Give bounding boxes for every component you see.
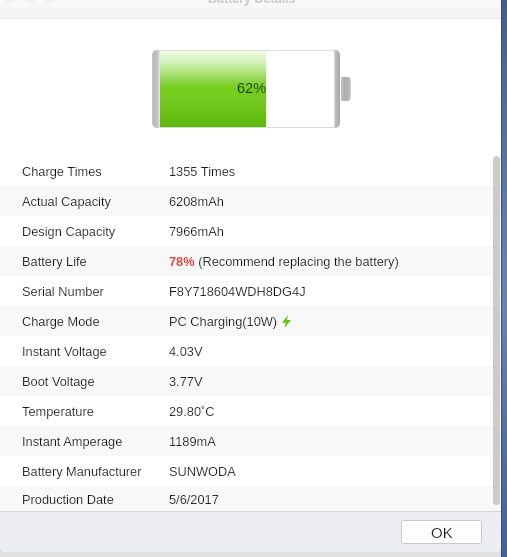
button[interactable]: Production Date	[0, 486, 501, 512]
staticText: Instant Amperage	[22, 434, 123, 448]
button[interactable]: Actual Capacity	[0, 186, 501, 216]
staticText: 6208mAh	[169, 194, 224, 208]
staticText: 29.80˚C	[169, 404, 215, 418]
staticText: PC Charging(10W)	[169, 314, 278, 328]
staticText: 62%	[237, 80, 267, 96]
staticText: F8Y718604WDH8DG4J	[169, 284, 306, 298]
button[interactable]: Charge Mode	[0, 306, 501, 336]
button[interactable]: Instant Amperage	[0, 426, 501, 456]
staticText: Serial Number	[22, 284, 104, 298]
staticText: Charge Times	[22, 164, 102, 178]
button[interactable]: Boot Voltage	[0, 366, 501, 396]
staticText: 5/6/2017	[169, 492, 219, 506]
staticText: Actual Capacity	[22, 194, 111, 208]
button[interactable]: Instant Voltage	[0, 336, 501, 366]
staticText: 78% (Recommend replacing the battery)	[169, 254, 399, 268]
button[interactable]: Design Capacity	[0, 216, 501, 246]
staticText: Design Capacity	[22, 224, 116, 238]
button[interactable]: Temperature	[0, 396, 501, 426]
staticText: Boot Voltage	[22, 374, 95, 388]
button[interactable]: OK	[401, 520, 482, 544]
staticText: Battery Details	[208, 0, 296, 6]
staticText: Temperature	[22, 404, 94, 418]
button[interactable]: Serial Number	[0, 276, 501, 306]
staticText: OK	[431, 524, 453, 541]
staticText: Charge Mode	[22, 314, 100, 328]
button[interactable]: Charge Times	[0, 156, 501, 186]
staticText: Battery Life	[22, 254, 87, 268]
staticText: Production Date	[22, 492, 114, 506]
staticText: Instant Voltage	[22, 344, 107, 358]
staticText: SUNWODA	[169, 464, 236, 478]
button[interactable]: Battery Manufacturer	[0, 456, 501, 486]
button[interactable]: Battery Life	[0, 246, 501, 276]
staticText: Battery Manufacturer	[22, 464, 142, 478]
staticText: 4.03V	[169, 344, 203, 358]
staticText: 3.77V	[169, 374, 203, 388]
staticText: 7966mAh	[169, 224, 224, 238]
staticText: 1189mA	[169, 434, 216, 448]
staticText: 1355 Times	[169, 164, 236, 178]
